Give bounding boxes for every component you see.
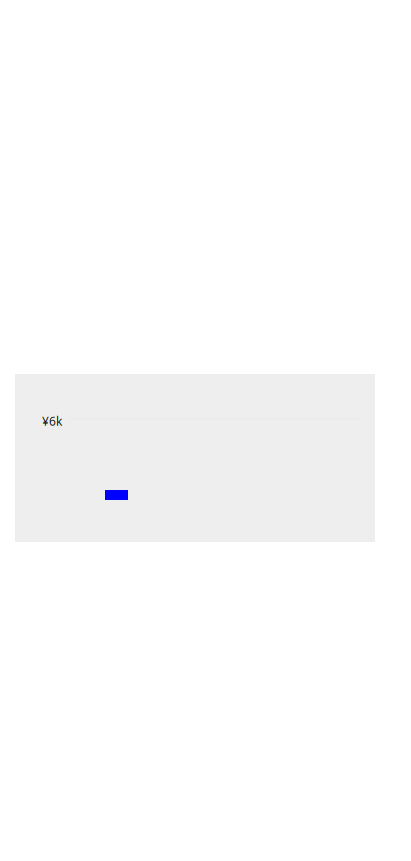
staticText: ¥6k (42, 413, 62, 429)
